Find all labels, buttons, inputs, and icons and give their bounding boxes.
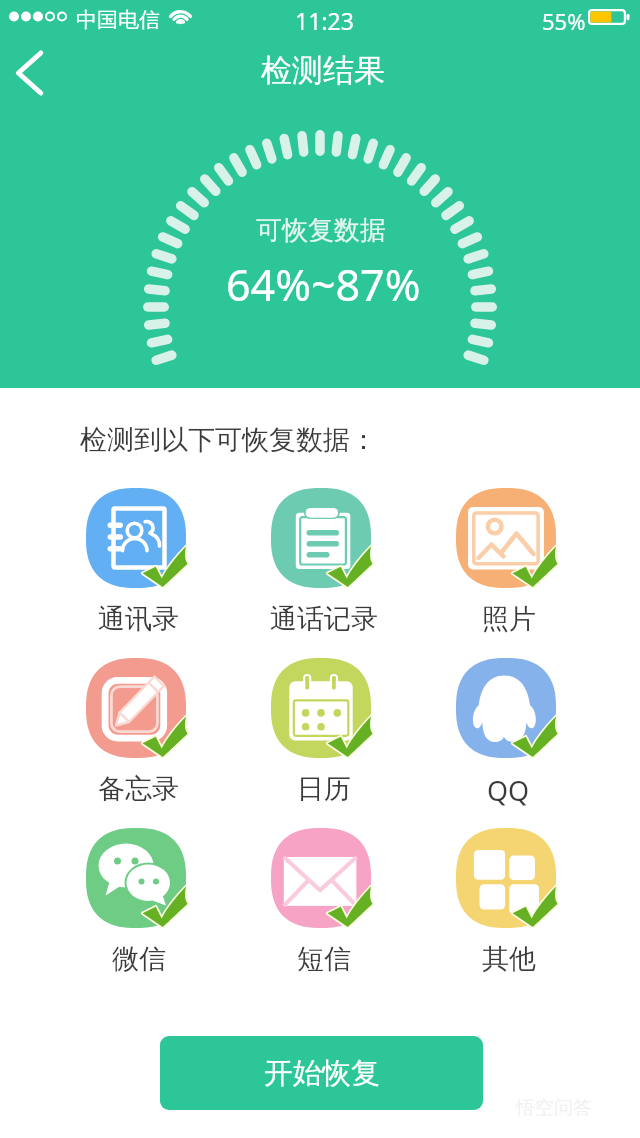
staticText: 检测到以下可恢复数据：	[80, 423, 377, 457]
staticText: QQ	[487, 772, 530, 809]
button[interactable]: 通讯录	[45, 488, 232, 636]
staticText: 备忘录	[98, 772, 179, 806]
button[interactable]: Back	[1, 45, 57, 101]
button[interactable]: 备忘录	[45, 658, 232, 806]
staticText: 55%	[542, 6, 586, 36]
button[interactable]: 微信	[45, 828, 232, 976]
staticText: 照片	[482, 602, 536, 636]
button[interactable]: 照片	[415, 488, 602, 636]
button[interactable]: QQ	[415, 658, 602, 809]
staticText: 64%~87%	[226, 255, 421, 314]
staticText: 微信	[112, 942, 166, 976]
staticText: 通讯录	[98, 602, 179, 636]
staticText: 可恢复数据	[256, 214, 386, 247]
staticText: 日历	[297, 772, 351, 806]
staticText: 短信	[297, 942, 351, 976]
staticText: 通话记录	[270, 602, 378, 636]
button[interactable]: 开始恢复	[160, 1036, 483, 1110]
button[interactable]: 通话记录	[230, 488, 417, 636]
staticText: 11:23	[295, 5, 354, 36]
staticText: 检测结果	[261, 51, 385, 90]
button[interactable]: 短信	[230, 828, 417, 976]
staticText: 中国电信	[76, 7, 160, 33]
button[interactable]: 日历	[230, 658, 417, 806]
button[interactable]: 其他	[415, 828, 602, 976]
staticText: 其他	[482, 942, 536, 976]
staticText: 悟空问答	[516, 1096, 592, 1120]
staticText: 开始恢复	[264, 1055, 380, 1092]
